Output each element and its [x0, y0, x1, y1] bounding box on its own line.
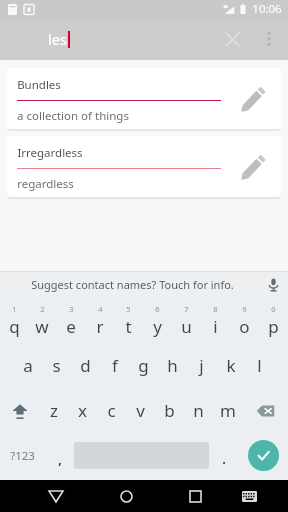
staticText: l: [257, 354, 262, 377]
staticText: w: [35, 315, 49, 338]
staticText: 0: [271, 304, 276, 314]
staticText: 3: [69, 304, 74, 314]
staticText: regardless: [17, 176, 74, 192]
staticText: b: [164, 399, 175, 422]
button[interactable]: 1: [0, 298, 28, 343]
button[interactable]: Switch keyboard: [228, 480, 270, 512]
button[interactable]: Voice input: [258, 271, 288, 298]
staticText: les: [48, 29, 67, 49]
staticText: j: [199, 354, 204, 377]
staticText: a: [23, 354, 33, 377]
button[interactable]: Recent apps: [174, 480, 216, 512]
staticText: 8: [213, 304, 218, 314]
button[interactable]: Clear search: [212, 19, 252, 59]
button[interactable]: 4: [85, 298, 114, 343]
button[interactable]: k: [216, 343, 245, 388]
staticText: v: [136, 399, 145, 422]
button[interactable]: Edit: [225, 68, 281, 129]
button[interactable]: h: [158, 343, 187, 388]
staticText: n: [193, 399, 204, 422]
staticText: 7: [184, 304, 189, 314]
staticText: ,: [58, 450, 62, 468]
button[interactable]: Edit: [225, 136, 281, 197]
button[interactable]: 5: [114, 298, 143, 343]
button[interactable]: Backspace: [242, 388, 288, 433]
staticText: c: [107, 399, 116, 422]
button[interactable]: c: [97, 388, 126, 433]
staticText: .: [222, 450, 226, 468]
staticText: ?123: [10, 448, 35, 464]
staticText: g: [138, 354, 149, 377]
staticText: Suggest contact names? Touch for info.: [31, 277, 234, 292]
button[interactable]: j: [187, 343, 216, 388]
staticText: y: [153, 315, 162, 338]
button[interactable]: z: [39, 388, 68, 433]
button[interactable]: 8: [201, 298, 230, 343]
staticText: r: [96, 315, 104, 338]
button[interactable]: Home: [105, 480, 147, 512]
staticText: e: [66, 315, 76, 338]
button[interactable]: Irregardless: [7, 136, 281, 197]
button[interactable]: n: [184, 388, 213, 433]
button[interactable]: x: [68, 388, 97, 433]
staticText: 5: [126, 304, 131, 314]
button[interactable]: 9: [230, 298, 259, 343]
staticText: m: [220, 399, 236, 422]
staticText: q: [9, 315, 20, 338]
button[interactable]: Shift: [0, 388, 39, 433]
button[interactable]: m: [213, 388, 242, 433]
staticText: u: [181, 315, 192, 338]
button[interactable]: Back: [34, 480, 77, 512]
button[interactable]: d: [71, 343, 100, 388]
staticText: 9: [242, 304, 247, 314]
staticText: x: [78, 399, 87, 422]
button[interactable]: 0: [259, 298, 288, 343]
button[interactable]: a: [13, 343, 42, 388]
staticText: h: [167, 354, 178, 377]
button[interactable]: Done: [238, 433, 288, 478]
staticText: Irregardless: [17, 145, 83, 161]
staticText: i: [213, 315, 218, 338]
button[interactable]: 3: [56, 298, 85, 343]
button[interactable]: .: [209, 433, 238, 478]
staticText: 2: [40, 304, 45, 314]
button[interactable]: f: [100, 343, 129, 388]
button[interactable]: s: [42, 343, 71, 388]
button[interactable]: b: [155, 388, 184, 433]
button[interactable]: Bundles: [7, 68, 281, 129]
button[interactable]: l: [245, 343, 274, 388]
staticText: d: [80, 354, 91, 377]
staticText: Bundles: [17, 77, 61, 93]
button[interactable]: 2: [28, 298, 56, 343]
staticText: 10:06: [252, 1, 282, 17]
staticText: o: [239, 315, 250, 338]
staticText: a collection of things: [17, 108, 129, 124]
staticText: p: [268, 315, 279, 338]
staticText: 4: [98, 304, 103, 314]
staticText: 6: [155, 304, 160, 314]
button[interactable]: g: [129, 343, 158, 388]
staticText: t: [125, 315, 132, 338]
staticText: k: [226, 354, 236, 377]
button[interactable]: ,: [45, 433, 74, 478]
button[interactable]: 6: [143, 298, 172, 343]
button[interactable]: v: [126, 388, 155, 433]
staticText: 1: [12, 304, 17, 314]
button[interactable]: ?123: [0, 433, 45, 478]
staticText: z: [50, 399, 58, 422]
button[interactable]: Suggest contact names? Touch for info.: [0, 271, 288, 298]
button[interactable]: More options: [252, 22, 286, 56]
staticText: f: [112, 354, 118, 377]
staticText: s: [52, 354, 61, 377]
button[interactable]: 7: [172, 298, 201, 343]
